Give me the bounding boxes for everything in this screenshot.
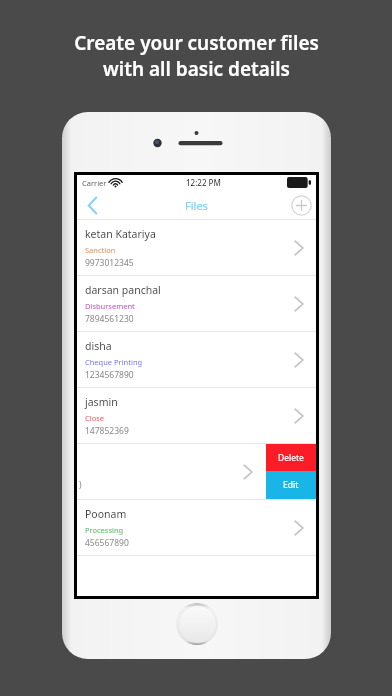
button[interactable]: Back [77,190,107,220]
staticText: ) [79,479,82,491]
staticText: Sanction [85,245,116,255]
staticText: Delete [278,452,304,464]
staticText: disha [85,339,112,353]
staticText: Poonam [85,507,127,521]
staticText: 9973012345 [85,257,134,269]
staticText: Cheque Printing [85,357,143,367]
staticText: 147852369 [85,425,129,437]
button[interactable]: darsan panchal [77,276,316,332]
staticText: Create your customer files with all basi… [74,30,319,81]
staticText: ketan Katariya [85,227,156,241]
button[interactable]: jasmin [77,388,316,444]
staticText: darsan panchal [85,283,161,297]
button[interactable]: Edit [266,471,316,499]
staticText: Carrier [82,178,107,188]
button[interactable]: ketan Katariya [77,220,316,276]
staticText: Processing [85,525,124,535]
staticText: jasmin [85,395,118,409]
button[interactable]: Home [176,603,218,645]
button[interactable]: Poonam [77,500,316,556]
button[interactable]: Add file [286,190,316,220]
staticText: Files [185,198,208,213]
staticText: 12:22 PM [186,177,221,188]
staticText: Disbursement [85,301,135,311]
button[interactable]: Delete [266,444,316,471]
staticText: 456567890 [85,537,129,549]
button[interactable]: disha [77,332,316,388]
staticText: 1234567890 [85,369,134,381]
button[interactable]: ) [77,444,266,499]
staticText: Edit [283,479,299,491]
staticText: 7894561230 [85,313,134,325]
staticText: Close [85,413,105,423]
